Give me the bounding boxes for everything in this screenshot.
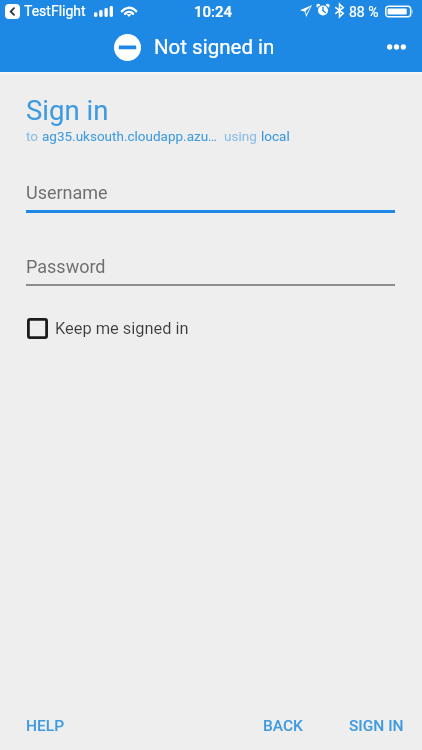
staticText: using (224, 128, 261, 144)
button[interactable]: Keep me signed in (26, 318, 189, 339)
staticText: SIGN IN (349, 717, 404, 735)
staticText: TestFlight (24, 3, 86, 19)
staticText: Sign in (26, 94, 109, 126)
button[interactable]: HELP (18, 710, 73, 742)
staticText: Password (26, 256, 106, 277)
staticText: Not signed in (154, 35, 275, 59)
staticText: Keep me signed in (55, 319, 189, 338)
button[interactable]: Username (26, 182, 395, 213)
button[interactable]: Password (26, 256, 395, 286)
button[interactable]: More options (372, 23, 420, 71)
button[interactable]: Back to TestFlight (5, 4, 20, 19)
staticText: to (26, 128, 42, 144)
staticText: local (261, 128, 290, 144)
staticText: 88 % (349, 4, 379, 20)
staticText: HELP (26, 717, 65, 735)
staticText: BACK (263, 717, 303, 735)
staticText: 10:24 (194, 3, 233, 21)
button[interactable]: SIGN IN (341, 710, 412, 742)
button[interactable]: BACK (255, 710, 311, 742)
staticText: Username (26, 182, 108, 203)
staticText: ag35.uksouth.cloudapp.azu… (42, 128, 218, 144)
